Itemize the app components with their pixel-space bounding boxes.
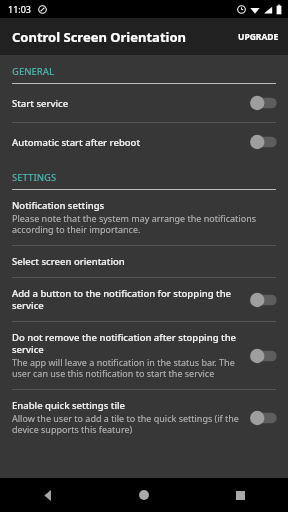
staticText: Automatic start after reboot bbox=[12, 136, 141, 149]
button[interactable]: Home bbox=[124, 478, 164, 512]
button[interactable]: Toggle bbox=[246, 346, 278, 366]
staticText: The app will leave a notification in the… bbox=[12, 356, 240, 380]
staticText: SETTINGS bbox=[12, 171, 57, 184]
staticText: Enable quick settings tile bbox=[12, 399, 125, 412]
staticText: Start service bbox=[12, 97, 69, 110]
staticText: Select screen orientation bbox=[12, 255, 125, 268]
staticText: Control Screen Orientation bbox=[12, 28, 186, 46]
staticText: GENERAL bbox=[12, 65, 55, 78]
button[interactable]: Automatic start after reboot bbox=[0, 123, 288, 161]
button[interactable]: Back bbox=[28, 478, 68, 512]
button[interactable]: UPGRADE bbox=[229, 25, 288, 49]
staticText: Do not remove the notification after sto… bbox=[12, 331, 240, 356]
staticText: UPGRADE bbox=[238, 31, 279, 43]
staticText: Allow the user to add a tile to the quic… bbox=[12, 412, 240, 436]
staticText: 11:03 bbox=[8, 3, 32, 15]
button[interactable]: Toggle bbox=[246, 93, 278, 113]
button[interactable]: Toggle bbox=[246, 132, 278, 152]
button[interactable]: Enable quick settings tile bbox=[0, 390, 288, 445]
button[interactable]: Start service bbox=[0, 84, 288, 122]
button[interactable]: Do not remove the notification after sto… bbox=[0, 322, 288, 389]
button[interactable]: Recents bbox=[220, 478, 260, 512]
staticText: Add a button to the notification for sto… bbox=[12, 287, 240, 312]
button[interactable]: Toggle bbox=[246, 290, 278, 310]
staticText: Notification settings bbox=[12, 199, 105, 212]
button[interactable]: Notification settings bbox=[0, 190, 288, 245]
button[interactable]: Toggle bbox=[246, 408, 278, 428]
staticText: Please note that the system may arrange … bbox=[12, 212, 276, 236]
button[interactable]: Add a button to the notification for sto… bbox=[0, 278, 288, 321]
button[interactable]: Select screen orientation bbox=[0, 246, 288, 277]
